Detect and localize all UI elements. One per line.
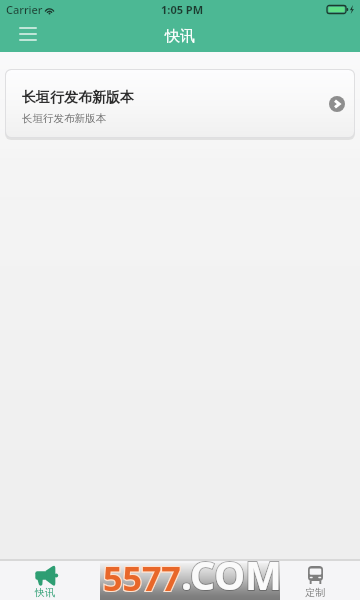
staticText: 长垣行发布新版本: [22, 89, 134, 107]
button[interactable]: 定制: [270, 561, 360, 600]
staticText: 5577: [103, 555, 181, 600]
button[interactable]: 路线: [90, 561, 180, 600]
staticText: 路线: [125, 586, 145, 599]
staticText: .COM: [181, 548, 282, 600]
staticText: 快讯: [35, 586, 55, 599]
button[interactable]: 长垣行发布新版本: [6, 70, 354, 137]
staticText: .COM: [181, 548, 282, 600]
button[interactable]: 站点: [180, 561, 270, 600]
staticText: 1:05 PM: [161, 2, 204, 17]
button[interactable]: Menu: [20, 25, 44, 49]
staticText: 定制: [305, 586, 325, 599]
staticText: 站点: [215, 586, 235, 599]
staticText: 5577: [103, 555, 181, 600]
staticText: Carrier: [6, 2, 43, 17]
staticText: 长垣行发布新版本: [22, 112, 106, 125]
staticText: 快讯: [165, 27, 195, 46]
button[interactable]: 快讯: [0, 561, 90, 600]
